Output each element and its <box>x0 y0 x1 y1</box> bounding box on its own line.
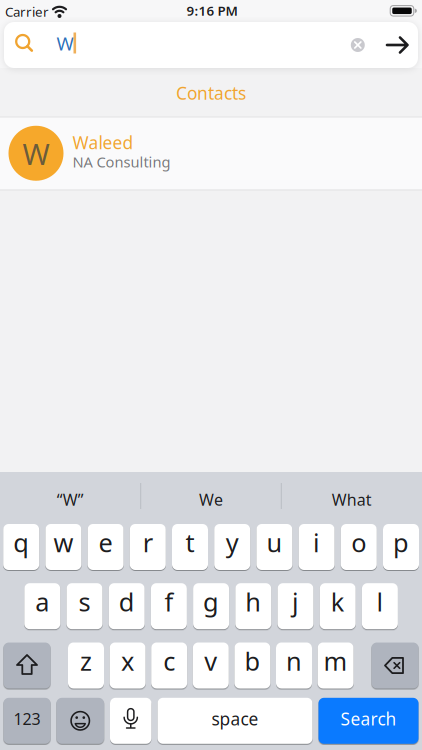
staticText: We <box>199 489 223 510</box>
staticText: c <box>163 644 175 678</box>
staticText: k <box>331 585 345 618</box>
button[interactable]: g <box>193 583 229 629</box>
button[interactable]: h <box>235 583 271 629</box>
button[interactable]: space <box>157 698 312 744</box>
staticText: Contacts <box>176 81 246 104</box>
staticText: p <box>393 526 409 559</box>
button[interactable]: w <box>45 524 81 570</box>
button[interactable]: e <box>88 524 124 570</box>
button[interactable]: q <box>3 524 39 570</box>
staticText: f <box>164 585 173 618</box>
staticText: s <box>78 585 90 618</box>
button[interactable]: m <box>318 642 354 688</box>
button[interactable]: Emoji <box>56 698 104 744</box>
button[interactable]: We <box>141 477 281 521</box>
button[interactable]: v <box>193 642 229 688</box>
staticText: Carrier <box>5 3 49 20</box>
button[interactable]: p <box>383 524 419 570</box>
staticText: Waleed <box>72 131 133 154</box>
button[interactable]: d <box>109 583 145 629</box>
button[interactable]: What <box>282 477 422 521</box>
button[interactable]: W <box>0 117 422 189</box>
staticText: q <box>13 526 29 559</box>
button[interactable]: Search field <box>4 22 418 68</box>
staticText: y <box>226 526 239 559</box>
button[interactable]: Delete <box>371 642 418 688</box>
staticText: a <box>35 585 49 618</box>
button[interactable]: 123 <box>3 698 50 744</box>
button[interactable]: i <box>299 524 335 570</box>
staticText: w <box>53 526 73 559</box>
button[interactable]: a <box>24 583 60 629</box>
staticText: space <box>211 707 258 730</box>
staticText: b <box>244 644 260 678</box>
button[interactable]: o <box>341 524 377 570</box>
staticText: l <box>376 585 383 618</box>
button[interactable]: Search <box>318 698 418 744</box>
staticText: i <box>313 526 320 559</box>
staticText: u <box>266 526 282 559</box>
staticText: W <box>22 134 49 173</box>
staticText: r <box>143 526 153 559</box>
staticText: t <box>185 526 194 559</box>
staticText: 9:16 PM <box>186 2 237 19</box>
staticText: g <box>203 585 219 618</box>
button[interactable]: j <box>277 583 313 629</box>
button[interactable]: k <box>320 583 356 629</box>
button[interactable]: Search <box>383 33 411 57</box>
staticText: What <box>332 489 372 510</box>
button[interactable]: r <box>130 524 166 570</box>
button[interactable]: y <box>214 524 250 570</box>
staticText: NA Consulting <box>72 152 170 171</box>
button[interactable]: Shift <box>3 642 50 688</box>
button[interactable]: u <box>256 524 292 570</box>
button[interactable]: l <box>362 583 398 629</box>
staticText: h <box>245 585 261 618</box>
button[interactable]: Clear text <box>343 30 373 60</box>
staticText: 123 <box>13 708 40 729</box>
button[interactable]: s <box>66 583 102 629</box>
button[interactable]: t <box>172 524 208 570</box>
button[interactable]: “W” <box>0 477 140 521</box>
staticText: z <box>80 644 92 678</box>
staticText: d <box>119 585 135 618</box>
staticText: e <box>99 526 113 559</box>
button[interactable]: x <box>110 642 146 688</box>
staticText: “W” <box>57 489 84 510</box>
button[interactable]: c <box>151 642 187 688</box>
button[interactable]: n <box>276 642 312 688</box>
button[interactable]: b <box>234 642 270 688</box>
button[interactable]: f <box>151 583 187 629</box>
staticText: v <box>204 644 217 678</box>
staticText: Search <box>340 707 396 730</box>
staticText: x <box>121 644 134 678</box>
staticText: m <box>324 644 348 678</box>
staticText: j <box>292 585 299 618</box>
staticText: n <box>286 644 302 678</box>
button[interactable]: z <box>68 642 104 688</box>
staticText: o <box>351 526 366 559</box>
button[interactable]: Dictation <box>110 698 151 744</box>
staticText: W <box>56 31 73 56</box>
